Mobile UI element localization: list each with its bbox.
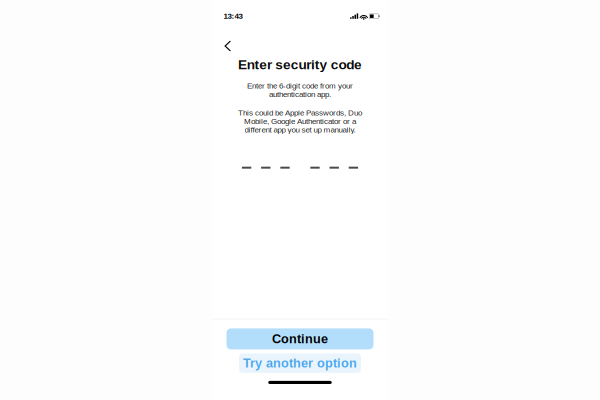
staticText: authentication app.	[269, 90, 331, 99]
staticText: Enter security code	[238, 57, 362, 72]
staticText: different app you set up manually.	[244, 125, 355, 134]
button[interactable]: Try another option	[239, 353, 361, 373]
staticText: Try another option	[243, 356, 357, 370]
staticText: 13:43	[223, 11, 242, 20]
staticText: Mobile, Google Authenticator or a	[244, 117, 356, 126]
staticText: This could be Apple Passwords, Duo	[238, 108, 362, 117]
button[interactable]: Back	[212, 35, 250, 57]
staticText: Continue	[272, 332, 328, 346]
staticText: Enter the 6-digit code from your	[247, 81, 353, 90]
button[interactable]: Continue	[226, 328, 373, 349]
